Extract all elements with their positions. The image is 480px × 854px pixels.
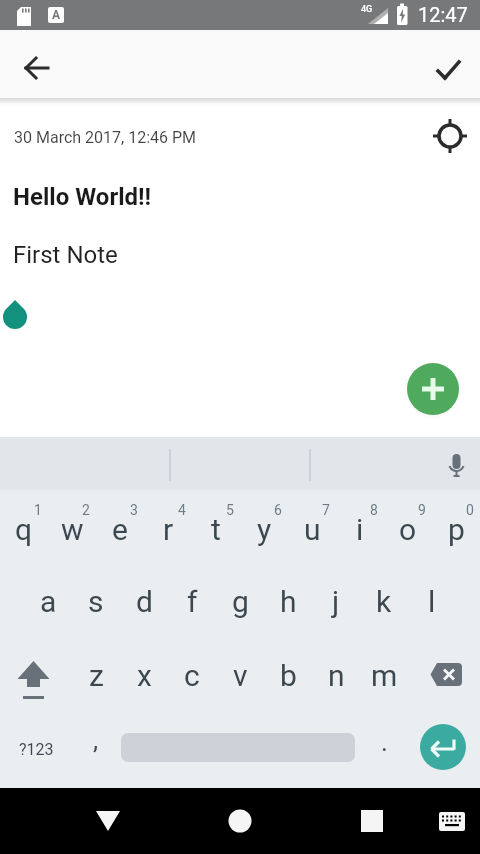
button[interactable]: u (288, 492, 336, 566)
button[interactable]: j (312, 564, 360, 638)
staticText: 2 (82, 502, 90, 518)
button[interactable] (348, 797, 396, 845)
staticText: h (280, 584, 297, 619)
staticText: 3 (130, 502, 138, 518)
button[interactable] (407, 363, 459, 415)
button[interactable]: g (216, 564, 264, 638)
staticText: 12:47 (418, 3, 468, 26)
button[interactable]: ?123 (6, 712, 66, 786)
staticText: v (233, 658, 248, 693)
staticText: l (428, 584, 436, 619)
button[interactable] (216, 797, 264, 845)
staticText: . (381, 727, 388, 757)
button[interactable] (426, 112, 474, 160)
staticText: A (52, 8, 61, 22)
staticText: e (112, 512, 128, 547)
button[interactable]: z (72, 638, 120, 712)
button[interactable]: p (432, 492, 480, 566)
staticText: n (328, 658, 345, 693)
staticText: m (371, 658, 398, 693)
button[interactable] (420, 638, 475, 712)
staticText: q (15, 512, 33, 547)
staticText: r (163, 512, 174, 547)
button[interactable]: . (360, 705, 408, 779)
staticText: 4 (178, 502, 186, 518)
staticText: ?123 (19, 740, 54, 759)
button[interactable]: y (240, 492, 288, 566)
staticText: 30 March 2017, 12:46 PM (14, 128, 197, 147)
button[interactable]: k (360, 564, 408, 638)
staticText: j (332, 584, 340, 619)
staticText: b (280, 658, 297, 693)
staticText: a (40, 584, 57, 619)
button[interactable]: e (96, 492, 144, 566)
staticText: d (136, 584, 153, 619)
staticText: x (137, 658, 152, 693)
button[interactable]: b (264, 638, 312, 712)
button[interactable] (13, 40, 61, 88)
button[interactable]: t (192, 492, 240, 566)
staticText: g (232, 584, 249, 619)
button[interactable] (432, 439, 480, 487)
button[interactable]: d (120, 564, 168, 638)
staticText: 8 (370, 502, 378, 518)
button[interactable]: m (360, 638, 408, 712)
staticText: u (304, 512, 321, 547)
button[interactable]: , (72, 703, 120, 777)
button[interactable] (430, 799, 474, 843)
staticText: s (88, 584, 104, 619)
button[interactable]: w (48, 492, 96, 566)
staticText: p (448, 512, 465, 547)
staticText: 7 (322, 502, 330, 518)
button[interactable]: v (216, 638, 264, 712)
button[interactable] (420, 724, 466, 770)
button[interactable] (9, 638, 69, 712)
button[interactable]: a (24, 564, 72, 638)
staticText: 9 (418, 502, 426, 518)
staticText: 4G (361, 4, 373, 15)
button[interactable]: f (168, 564, 216, 638)
staticText: 6 (274, 502, 282, 518)
button[interactable]: q (0, 492, 48, 566)
staticText: z (89, 658, 104, 693)
staticText: o (399, 512, 417, 547)
staticText: y (257, 512, 272, 547)
staticText: t (211, 512, 221, 547)
button[interactable]: c (168, 638, 216, 712)
staticText: i (356, 512, 364, 547)
button[interactable]: i (336, 492, 384, 566)
button[interactable]: l (408, 564, 456, 638)
button[interactable]: h (264, 564, 312, 638)
staticText: Hello World!! (13, 183, 152, 211)
staticText: k (376, 584, 392, 619)
button[interactable]: o (384, 492, 432, 566)
staticText: f (187, 584, 198, 619)
staticText: 0 (466, 502, 474, 518)
staticText: w (61, 512, 84, 547)
button[interactable]: s (72, 564, 120, 638)
staticText: First Note (13, 241, 118, 269)
button[interactable]: x (120, 638, 168, 712)
button[interactable]: r (144, 492, 192, 566)
button[interactable] (424, 46, 472, 94)
staticText: , (93, 725, 99, 755)
staticText: 5 (226, 502, 234, 518)
button[interactable] (84, 797, 132, 845)
staticText: 1 (34, 502, 42, 518)
button[interactable]: n (312, 638, 360, 712)
staticText: c (184, 658, 200, 693)
